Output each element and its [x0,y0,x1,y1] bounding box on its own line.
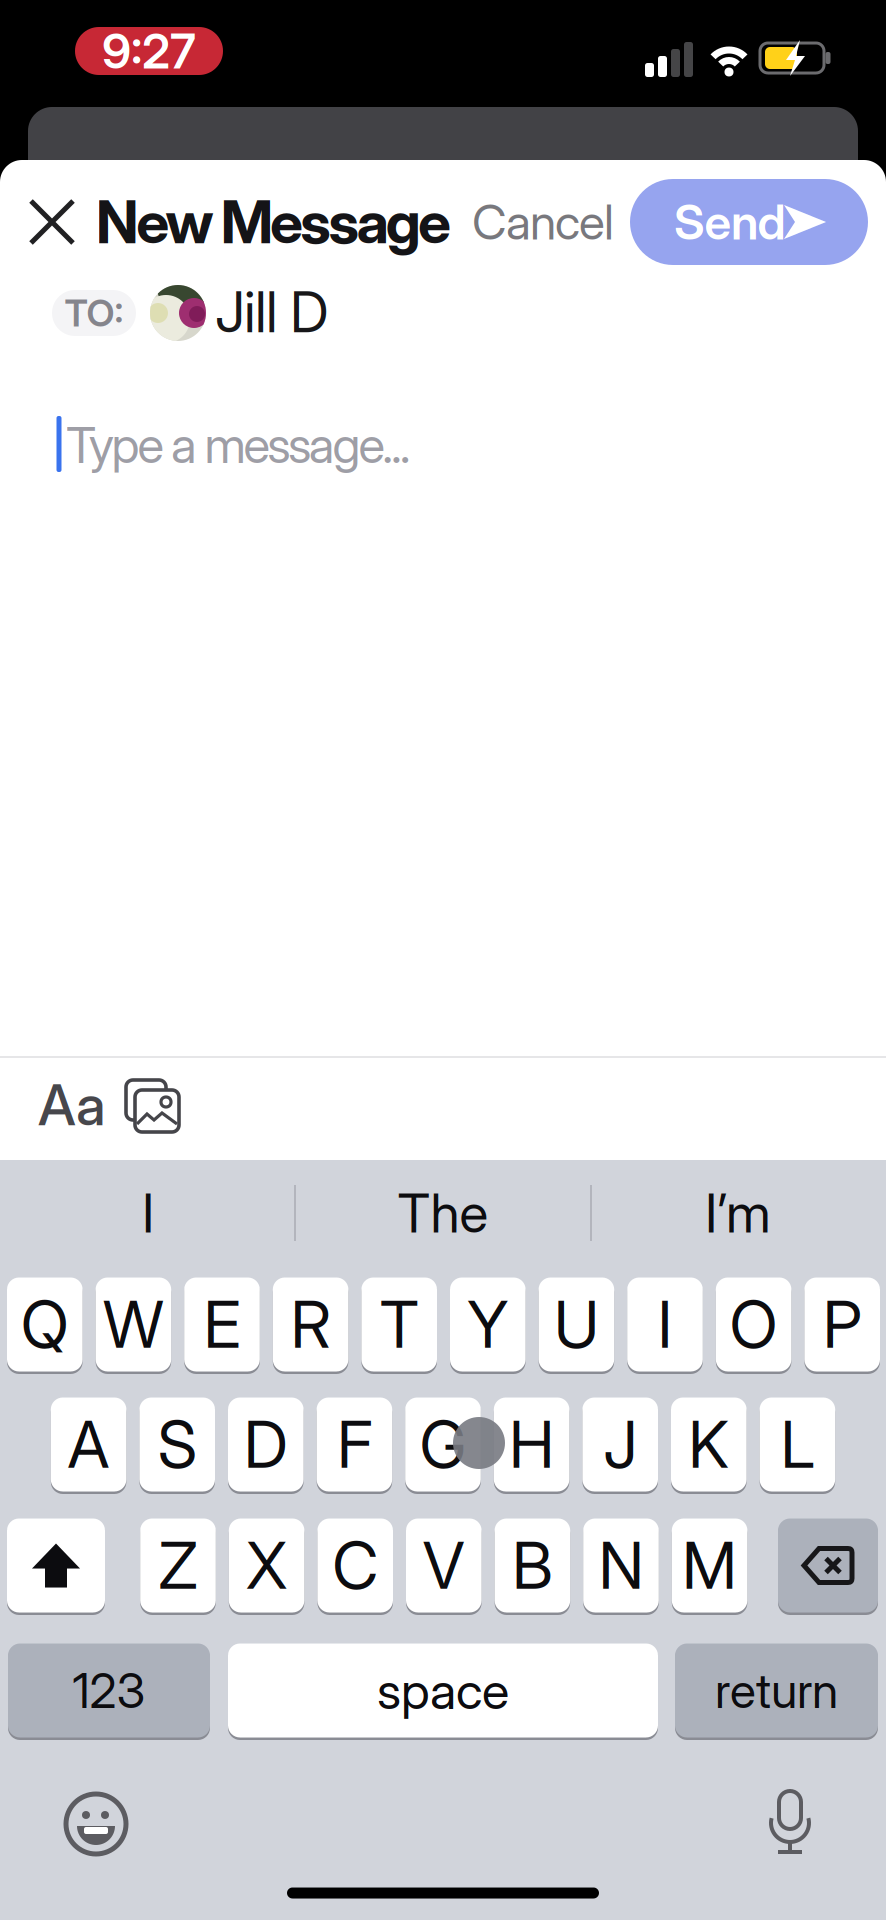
staticText: Aa [38,1072,106,1138]
staticText: Cancel [472,194,614,250]
staticText: D [244,1407,288,1482]
staticText: N [598,1528,643,1603]
staticText: 123 [72,1662,145,1719]
staticText: W [103,1287,164,1362]
staticText: K [688,1407,729,1482]
staticText: space [377,1661,509,1720]
staticText: G [419,1407,466,1482]
staticText: A [68,1407,110,1482]
staticText: E [203,1287,240,1362]
staticText: 9:27 [102,23,196,79]
staticText: Q [21,1287,69,1362]
staticText: C [332,1528,378,1603]
staticText: V [423,1528,465,1603]
staticText: Y [467,1287,508,1362]
staticText: Z [158,1528,197,1603]
staticText: O [730,1287,778,1362]
staticText: TO: [64,291,123,335]
staticText: The [397,1181,488,1244]
staticText: Type a message... [66,416,411,474]
staticText: X [246,1528,287,1603]
staticText: B [512,1528,553,1603]
staticText: return [715,1662,838,1719]
staticText: T [380,1287,419,1362]
staticText: S [158,1407,197,1482]
staticText: Jill D [215,279,329,345]
staticText: U [554,1287,599,1362]
staticText: I [142,1181,154,1244]
staticText: L [780,1407,814,1482]
staticText: F [337,1407,372,1482]
staticText: Send [674,194,785,250]
staticText: I’m [705,1181,771,1244]
staticText: I [657,1287,672,1362]
staticText: M [682,1528,737,1603]
staticText: H [509,1407,554,1482]
staticText: J [603,1407,637,1482]
staticText: P [823,1287,862,1362]
staticText: R [291,1287,331,1362]
staticText: New Message [96,187,451,257]
